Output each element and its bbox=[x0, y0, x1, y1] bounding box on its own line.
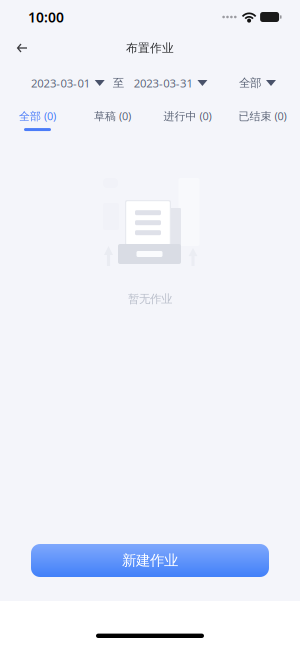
staticText: 全部 bbox=[239, 76, 261, 90]
button[interactable]: 新建作业 bbox=[31, 544, 269, 577]
staticText: 2023-03-01 bbox=[31, 76, 90, 90]
staticText: 布置作业 bbox=[126, 41, 174, 55]
button[interactable]: 全部 bbox=[239, 70, 276, 96]
staticText: 暂无作业 bbox=[128, 292, 172, 306]
staticText: 至 bbox=[113, 76, 124, 90]
staticText: 新建作业 bbox=[122, 552, 178, 569]
staticText: 进行中 (0) bbox=[163, 109, 211, 123]
button[interactable]: Back bbox=[6, 35, 38, 61]
button[interactable]: 进行中 (0) bbox=[150, 104, 225, 136]
button[interactable]: 2023-03-31 bbox=[134, 70, 207, 96]
staticText: 已结束 (0) bbox=[238, 109, 286, 123]
staticText: 2023-03-31 bbox=[134, 76, 192, 90]
button[interactable]: 全部 (0) bbox=[0, 104, 75, 136]
button[interactable]: 已结束 (0) bbox=[225, 104, 300, 136]
staticText: 10:00 bbox=[28, 8, 64, 26]
button[interactable]: 2023-03-01 bbox=[31, 70, 105, 96]
staticText: 全部 (0) bbox=[19, 109, 56, 123]
staticText: 草稿 (0) bbox=[94, 109, 131, 123]
button[interactable]: 草稿 (0) bbox=[75, 104, 150, 136]
